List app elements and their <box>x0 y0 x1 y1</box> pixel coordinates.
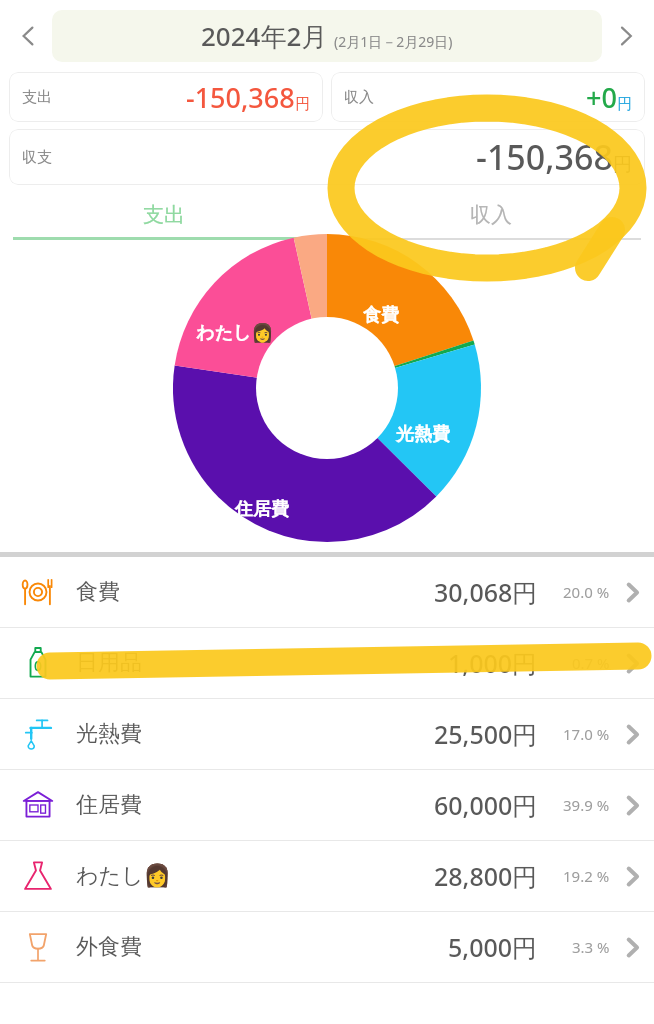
staticText: 収支 <box>22 148 52 167</box>
button[interactable]: 食費 <box>0 557 654 627</box>
staticText: 円 <box>617 95 632 114</box>
button[interactable]: 2024年2月 <box>52 10 602 62</box>
staticText: 食費 <box>363 304 399 327</box>
staticText: 収入 <box>470 202 512 228</box>
button[interactable]: Previous month <box>6 14 50 58</box>
button[interactable]: 光熱費 <box>0 699 654 769</box>
staticText: 住居費 <box>76 791 142 819</box>
staticText: 5,000円 <box>448 930 538 964</box>
staticText: (2月1日－2月29日) <box>334 32 453 51</box>
button[interactable]: 日用品 <box>0 628 654 698</box>
button[interactable]: 収入 <box>331 72 645 122</box>
button[interactable]: 外食費 <box>0 912 654 982</box>
staticText: 住居費 <box>235 498 289 521</box>
button[interactable]: 収支 <box>9 129 645 185</box>
button[interactable]: わたし👩 <box>0 841 654 911</box>
staticText: 外食費 <box>76 933 142 961</box>
staticText: 39.9 % <box>563 795 610 815</box>
staticText: 収入 <box>344 88 374 107</box>
button[interactable]: 収入 <box>327 193 654 237</box>
staticText: 支出 <box>22 88 52 107</box>
button[interactable]: 支出 <box>9 72 323 122</box>
button[interactable]: Next month <box>604 14 648 58</box>
staticText: 60,000円 <box>434 788 538 822</box>
button[interactable]: 支出 <box>0 193 327 237</box>
staticText: 17.0 % <box>563 724 610 744</box>
staticText: 日用品 <box>76 649 142 677</box>
staticText: +0 <box>586 79 617 116</box>
staticText: 支出 <box>143 202 185 228</box>
staticText: 0.7 % <box>572 653 610 673</box>
staticText: 2024年2月 <box>201 18 328 54</box>
staticText: 食費 <box>76 578 120 606</box>
staticText: 光熱費 <box>396 423 450 446</box>
staticText: 30,068円 <box>434 575 538 609</box>
staticText: 3.3 % <box>572 937 610 957</box>
staticText: 光熱費 <box>76 720 142 748</box>
staticText: 25,500円 <box>434 717 538 751</box>
button[interactable]: 住居費 <box>0 770 654 840</box>
staticText: 1,000円 <box>448 646 538 680</box>
staticText: 円 <box>295 95 310 114</box>
staticText: わたし👩 <box>76 862 171 890</box>
staticText: -150,368 <box>476 134 613 180</box>
staticText: 20.0 % <box>563 582 610 602</box>
staticText: 28,800円 <box>434 859 538 893</box>
staticText: 19.2 % <box>563 866 610 886</box>
staticText: -150,368 <box>186 79 295 116</box>
staticText: わたし👩 <box>196 322 274 345</box>
staticText: 円 <box>613 153 632 177</box>
